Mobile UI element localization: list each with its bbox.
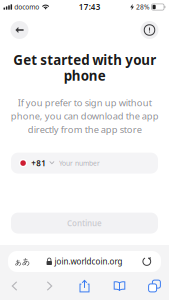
staticText: 28% bbox=[136, 3, 150, 11]
button[interactable]: Share bbox=[70, 277, 99, 295]
button[interactable]: Bookmarks bbox=[105, 277, 134, 295]
staticText: If you prefer to sign up without phone, … bbox=[10, 96, 158, 136]
button[interactable]: Tabs bbox=[140, 277, 169, 295]
button[interactable]: Continue bbox=[11, 213, 158, 234]
staticText: docomo bbox=[14, 3, 39, 11]
button[interactable]: Back bbox=[10, 21, 28, 39]
staticText: Your number bbox=[59, 159, 100, 168]
button[interactable]: Text size bbox=[10, 251, 34, 272]
button[interactable]: Reload bbox=[135, 251, 159, 272]
staticText: Continue bbox=[67, 218, 102, 228]
staticText: 17:43 bbox=[79, 2, 101, 12]
button[interactable]: Information bbox=[140, 21, 158, 39]
staticText: ぁあ bbox=[14, 257, 30, 266]
button[interactable]: Back bbox=[0, 277, 29, 295]
button[interactable]: +81 bbox=[11, 153, 158, 174]
staticText: +81 bbox=[31, 158, 46, 168]
staticText: Get started with your phone bbox=[13, 51, 156, 84]
staticText: join.worldcoin.org bbox=[54, 256, 122, 267]
button[interactable]: Forward bbox=[35, 277, 64, 295]
